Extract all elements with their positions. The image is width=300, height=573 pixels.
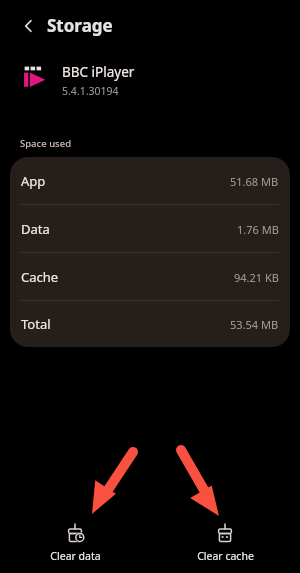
button[interactable]: Clear cache bbox=[150, 518, 300, 568]
staticText: 5.4.1.30194 bbox=[62, 84, 119, 98]
button[interactable]: Total bbox=[10, 301, 290, 347]
button[interactable]: Clear data bbox=[0, 518, 150, 568]
staticText: App bbox=[21, 172, 46, 190]
button[interactable]: Data bbox=[10, 205, 290, 253]
staticText: Total bbox=[21, 315, 51, 333]
staticText: Storage bbox=[47, 14, 113, 37]
staticText: 51.68 MB bbox=[230, 174, 279, 189]
button[interactable]: App bbox=[10, 157, 290, 205]
button[interactable]: Back bbox=[14, 11, 44, 41]
staticText: 94.21 KB bbox=[234, 270, 279, 285]
staticText: Clear data bbox=[50, 549, 101, 563]
staticText: Clear cache bbox=[197, 549, 254, 563]
staticText: Cache bbox=[21, 268, 59, 286]
staticText: BBC iPlayer bbox=[62, 63, 135, 81]
button[interactable]: Cache bbox=[10, 253, 290, 301]
staticText: Data bbox=[21, 220, 50, 238]
staticText: 53.54 MB bbox=[230, 317, 279, 332]
staticText: Space used bbox=[20, 137, 72, 150]
staticText: 1.76 MB bbox=[237, 222, 279, 237]
